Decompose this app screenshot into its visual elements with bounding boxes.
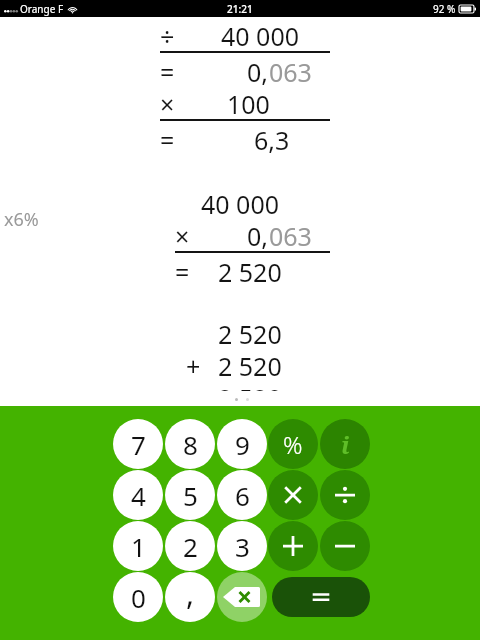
staticText: 40 000 [201, 187, 280, 219]
button[interactable]: Info [320, 419, 370, 469]
button[interactable]: , [165, 572, 215, 622]
staticText: × [160, 87, 175, 119]
button[interactable]: % [268, 419, 318, 469]
button[interactable]: 1 [113, 521, 163, 571]
button[interactable]: Multiply [268, 470, 318, 520]
staticText: x6% [4, 207, 39, 232]
staticText: , [186, 573, 195, 614]
staticText: = [160, 123, 175, 155]
staticText: + [186, 349, 201, 381]
staticText: 2 520 [218, 381, 282, 391]
staticText: ÷ [160, 19, 175, 51]
staticText: % [283, 428, 303, 461]
button[interactable]: 6 [217, 470, 267, 520]
staticText: i [341, 428, 350, 461]
staticText: 2 520 [218, 255, 282, 287]
staticText: 4 [131, 478, 146, 513]
staticText: 2 [183, 529, 198, 564]
staticText: 6,3 [254, 123, 290, 155]
staticText: = [175, 255, 190, 287]
staticText: 063 [269, 219, 312, 251]
staticText: Orange F [20, 2, 64, 16]
staticText: 40 000 [221, 19, 300, 51]
staticText: 0, [247, 219, 269, 251]
button[interactable]: 0 [113, 572, 163, 622]
staticText: 3 [235, 529, 250, 564]
button[interactable]: 8 [165, 419, 215, 469]
staticText: 100 [227, 87, 270, 119]
staticText: 7 [131, 427, 146, 462]
staticText: 1 [131, 529, 146, 564]
staticText: 21:21 [227, 2, 253, 16]
button[interactable]: 3 [217, 521, 267, 571]
button[interactable]: Divide [320, 470, 370, 520]
staticText: 2 520 [218, 349, 282, 381]
button[interactable]: Subtract [320, 521, 370, 571]
button[interactable]: Backspace [217, 572, 267, 622]
staticText: 0, [247, 55, 269, 87]
staticText: 2 520 [218, 317, 282, 349]
staticText: 8 [183, 427, 198, 462]
staticText: 6 [235, 478, 250, 513]
staticText: 9 [235, 427, 250, 462]
button[interactable]: 2 [165, 521, 215, 571]
staticText: 92 % [433, 2, 456, 16]
staticText: 5 [183, 478, 198, 513]
staticText: × [175, 219, 190, 251]
button[interactable]: 4 [113, 470, 163, 520]
button[interactable]: 5 [165, 470, 215, 520]
button[interactable]: Equals [272, 577, 370, 617]
staticText: 063 [269, 55, 312, 87]
staticText: 0 [131, 580, 146, 615]
staticText: = [160, 55, 175, 87]
button[interactable]: 7 [113, 419, 163, 469]
button[interactable]: 9 [217, 419, 267, 469]
button[interactable]: Add [268, 521, 318, 571]
